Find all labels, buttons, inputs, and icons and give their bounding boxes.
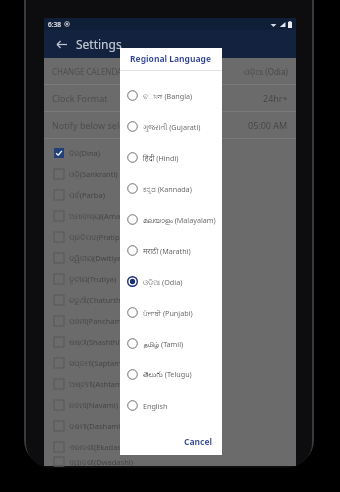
button[interactable]: Clock Format <box>44 85 296 111</box>
button[interactable]: ଅମାବାସ୍ୟା(Amabasya) <box>54 205 296 226</box>
button[interactable]: ଏକାଦଶୀ(Ekadashi) <box>54 436 296 457</box>
staticText: ଚତୁର୍ଥୀ(Chaturthi) <box>69 295 125 305</box>
button[interactable]: ପର୍ବ(Parba) <box>54 184 296 205</box>
staticText: Notify below selected <box>52 119 143 131</box>
button[interactable]: ਪੰਜਾਬੀ (Punjabi) <box>127 297 222 328</box>
button[interactable]: ଦ୍ୱିତୀୟ(Dwitiya) <box>54 247 296 268</box>
button[interactable]: ଦଶମୀ(Dashami) <box>54 415 296 436</box>
staticText: ଦଶମୀ(Dashami) <box>69 421 123 431</box>
staticText: Settings <box>76 36 122 52</box>
staticText: ଦ୍ୱିତୀୟ(Dwitiya) <box>69 253 124 263</box>
button[interactable]: ଅଷ୍ଟମୀ(Ashtami) <box>54 373 296 394</box>
button[interactable]: தமிழ் (Tamil) <box>127 328 222 359</box>
button[interactable]: ପ୍ରତିପଦ(Pratipada) <box>54 226 296 247</box>
staticText: ଅଷ୍ଟମୀ(Ashtami) <box>69 379 127 389</box>
staticText: ସପ୍ତମୀ(Saptami) <box>69 358 126 368</box>
staticText: हिंदी (Hindi) <box>143 153 179 163</box>
button[interactable]: ପଞ୍ଚମୀ(Panchami) <box>54 310 296 331</box>
staticText: తెలుగు (Telugu) <box>143 369 192 380</box>
staticText: ଷଷ୍ଠୀ(Shashthi) <box>69 337 122 347</box>
staticText: ગુજરાતી (Gujarati) <box>143 122 201 132</box>
staticText: ଓଡ଼ିଆ (Odia) <box>143 277 183 287</box>
staticText: ଦ୍ୱାଦଶୀ(Dwadashi) <box>69 457 133 466</box>
staticText: ବাংলা (Bangla) <box>143 91 193 101</box>
staticText: தமிழ் (Tamil) <box>143 339 184 349</box>
button[interactable]: മലയാളം (Malayalam) <box>127 204 222 235</box>
button[interactable]: ଚତୁର୍ଥୀ(Chaturthi) <box>54 289 296 310</box>
staticText: 05:00 AM <box>248 119 288 131</box>
button[interactable]: CHANGE CALENDAR <box>44 58 296 84</box>
staticText: ਪੰਜਾਬੀ (Punjabi) <box>143 308 193 318</box>
staticText: Cancel <box>184 436 213 448</box>
button[interactable]: ગુજરાતી (Gujarati) <box>127 111 222 142</box>
button[interactable]: ଦିନ(Dina) <box>54 142 296 163</box>
staticText: ଏକାଦଶୀ(Ekadashi) <box>69 442 130 452</box>
staticText: Regional Language <box>130 53 212 65</box>
staticText: ପ୍ରତିପଦ(Pratipada) <box>69 232 135 242</box>
staticText: ಕನ್ನಡ (Kannada) <box>143 184 192 194</box>
staticText: 24hr+ <box>263 92 288 104</box>
button[interactable]: Cancel <box>175 432 222 452</box>
button[interactable]: తెలుగు (Telugu) <box>127 359 222 390</box>
staticText: English <box>143 401 168 411</box>
button[interactable]: ଓଡ଼ି(Sankranti) <box>54 163 296 184</box>
staticText: മലയാളം (Malayalam) <box>143 215 216 225</box>
button[interactable]: ତୃତୀୟ(Trutiya) <box>54 268 296 289</box>
button[interactable]: ಕನ್ನಡ (Kannada) <box>127 173 222 204</box>
button[interactable]: हिंदी (Hindi) <box>127 142 222 173</box>
button[interactable]: मराठी (Marathi) <box>127 235 222 266</box>
button[interactable]: ଦ୍ୱାଦଶୀ(Dwadashi) <box>54 457 296 466</box>
button[interactable]: Notify below selected <box>44 112 296 138</box>
button[interactable]: ସପ୍ତମୀ(Saptami) <box>54 352 296 373</box>
staticText: ଅମାବାସ୍ୟା(Amabasya) <box>69 211 143 221</box>
staticText: ନବମୀ(Navami) <box>69 400 118 410</box>
button[interactable]: ବাংলা (Bangla) <box>127 80 222 111</box>
button[interactable]: ଓଡ଼ିଆ (Odia) <box>127 266 222 297</box>
button[interactable]: ନବମୀ(Navami) <box>54 394 296 415</box>
staticText: ଓଡ଼ି(Sankranti) <box>69 169 118 179</box>
staticText: ତୃତୀୟ(Trutiya) <box>69 274 117 284</box>
staticText: 6:38 <box>48 20 61 29</box>
staticText: ଓଡ଼ିଆ (Odia) <box>244 66 288 77</box>
button[interactable]: English <box>127 390 222 421</box>
staticText: ପର୍ବ(Parba) <box>69 190 105 200</box>
staticText: मराठी (Marathi) <box>143 246 191 256</box>
staticText: CHANGE CALENDAR <box>52 66 128 77</box>
staticText: ଦିନ(Dina) <box>69 148 101 158</box>
button[interactable]: Back <box>52 35 70 53</box>
staticText: ପଞ୍ଚମୀ(Panchami) <box>69 316 126 326</box>
staticText: Clock Format <box>52 92 108 104</box>
button[interactable]: ଷଷ୍ଠୀ(Shashthi) <box>54 331 296 352</box>
